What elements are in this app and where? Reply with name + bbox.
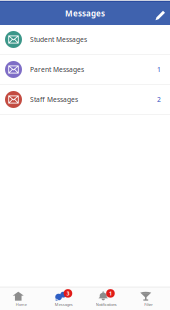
- staticText: Parent Messages: [30, 65, 84, 74]
- staticText: Filter: [144, 302, 153, 307]
- staticText: Home: [16, 302, 27, 307]
- staticText: Staff Messages: [30, 95, 78, 104]
- button[interactable]: 1: [85, 288, 127, 310]
- staticText: 1: [109, 290, 112, 297]
- staticText: Notifications: [96, 302, 117, 307]
- button[interactable]: Parent Messages: [0, 55, 170, 85]
- button[interactable]: Staff Messages: [0, 85, 170, 115]
- button[interactable]: Student Messages: [0, 25, 170, 55]
- staticText: Messages: [55, 302, 73, 307]
- staticText: 2: [157, 95, 161, 104]
- button[interactable]: Filter: [127, 288, 170, 310]
- staticText: Student Messages: [30, 35, 87, 44]
- button[interactable]: 3: [42, 288, 85, 310]
- staticText: 1: [157, 65, 161, 74]
- staticText: 3: [66, 290, 69, 297]
- button[interactable]: Home: [0, 288, 42, 310]
- staticText: Messages: [65, 8, 105, 19]
- button[interactable]: Compose: [150, 3, 170, 24]
